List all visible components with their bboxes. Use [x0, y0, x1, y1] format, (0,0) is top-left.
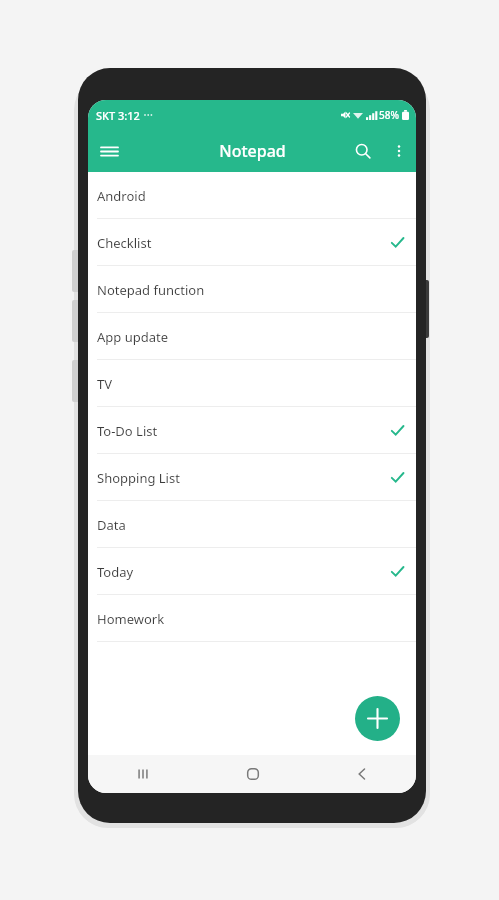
staticText: TV: [97, 375, 113, 393]
button[interactable]: TV: [88, 360, 416, 407]
button[interactable]: Add note: [355, 696, 400, 741]
button[interactable]: Checklist: [88, 219, 416, 266]
staticText: Shopping List: [97, 469, 180, 487]
staticText: Data: [97, 516, 126, 534]
button[interactable]: Recent apps: [88, 755, 198, 793]
button[interactable]: Back: [307, 755, 416, 793]
button[interactable]: Today: [88, 548, 416, 595]
staticText: Notepad: [219, 140, 286, 162]
button[interactable]: To-Do List: [88, 407, 416, 454]
staticText: Today: [97, 563, 134, 581]
button[interactable]: Shopping List: [88, 454, 416, 501]
button[interactable]: Homework: [88, 595, 416, 642]
staticText: App update: [97, 328, 169, 346]
button[interactable]: Search: [344, 132, 382, 170]
staticText: Homework: [97, 610, 165, 628]
button[interactable]: Home: [198, 755, 307, 793]
staticText: 58%: [379, 108, 399, 122]
button[interactable]: App update: [88, 313, 416, 360]
button[interactable]: Android: [88, 172, 416, 219]
button[interactable]: Notepad function: [88, 266, 416, 313]
staticText: To-Do List: [97, 422, 158, 440]
button[interactable]: Data: [88, 501, 416, 548]
staticText: Notepad function: [97, 281, 205, 299]
staticText: Android: [97, 187, 146, 205]
staticText: Checklist: [97, 234, 152, 252]
staticText: SKT 3:12: [96, 108, 140, 123]
button[interactable]: Menu: [88, 130, 130, 172]
button[interactable]: More options: [382, 134, 416, 168]
